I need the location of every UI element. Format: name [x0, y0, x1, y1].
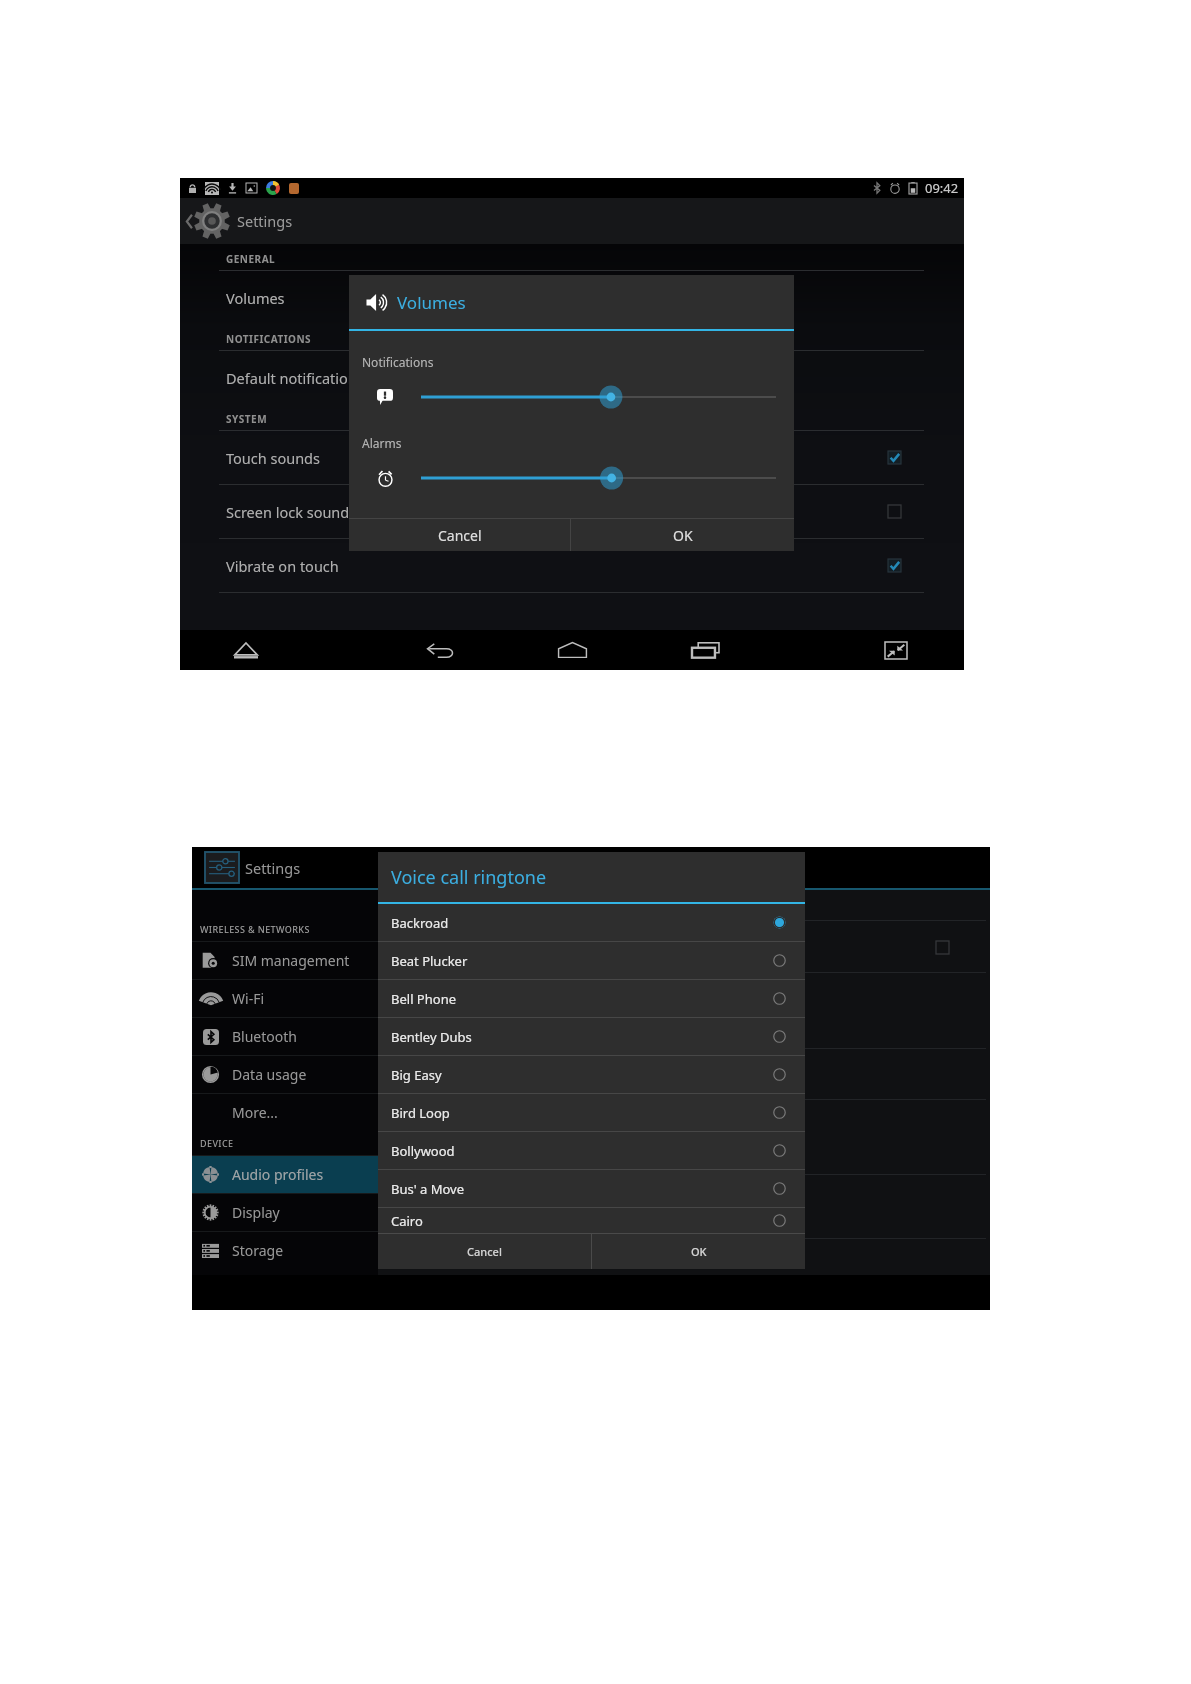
staticText: GENERAL — [226, 252, 964, 266]
button[interactable]: OK — [592, 1234, 805, 1269]
button[interactable]: Storage — [192, 1232, 378, 1269]
button[interactable]: Up — [226, 630, 266, 670]
staticText: Wi-Fi — [232, 989, 265, 1008]
staticText: Settings — [237, 211, 293, 231]
staticText: OK — [673, 526, 693, 545]
button[interactable]: Settings — [192, 847, 990, 888]
staticText: Volumes — [397, 291, 466, 314]
button[interactable]: Shrink screen — [876, 630, 916, 670]
button[interactable]: Bollywood — [378, 1132, 805, 1169]
button[interactable]: Big Easy — [378, 1056, 805, 1093]
button[interactable]: Cairo — [378, 1208, 805, 1233]
button[interactable]: Default notification — [180, 351, 964, 404]
button[interactable]: OK — [571, 519, 794, 551]
staticText: Cancel — [467, 1244, 502, 1259]
staticText: Audio profiles — [232, 1165, 324, 1184]
staticText: SIM management — [232, 951, 350, 970]
staticText: Bus' a Move — [391, 1180, 465, 1198]
staticText: Bollywood — [391, 1142, 455, 1160]
button[interactable]: Up: Settings — [180, 198, 293, 244]
staticText: More... — [232, 1103, 278, 1122]
staticText: Display — [232, 1203, 280, 1222]
button[interactable]: Bluetooth — [192, 1018, 378, 1055]
staticText: Bentley Dubs — [391, 1028, 472, 1046]
button[interactable]: Wi-Fi — [192, 980, 378, 1017]
button[interactable]: Bentley Dubs — [378, 1018, 805, 1055]
staticText: Volumes — [226, 288, 285, 308]
button[interactable]: Cancel — [378, 1234, 591, 1269]
button[interactable]: Vibrate on touch — [180, 539, 964, 592]
button[interactable]: More... — [192, 1094, 378, 1131]
button[interactable]: Back — [420, 630, 460, 670]
button[interactable]: Bird Loop — [378, 1094, 805, 1131]
button[interactable]: Display — [192, 1194, 378, 1231]
staticText: DEVICE — [200, 1137, 234, 1149]
staticText: Default notification — [226, 368, 357, 388]
staticText: Touch sounds — [226, 448, 320, 468]
staticText: Cancel — [438, 526, 482, 545]
button[interactable]: Touch sounds — [180, 431, 964, 484]
staticText: Backroad — [391, 914, 449, 932]
button[interactable]: Volumes — [180, 271, 964, 324]
staticText: Settings — [245, 858, 301, 878]
button[interactable]: Beat Plucker — [378, 942, 805, 979]
button[interactable]: Audio profiles — [192, 1156, 378, 1193]
button[interactable]: SIM management — [192, 942, 378, 979]
staticText: Data usage — [232, 1065, 307, 1084]
staticText: Bird Loop — [391, 1104, 450, 1122]
staticText: Alarms — [362, 435, 402, 451]
staticText: SYSTEM — [226, 412, 964, 426]
staticText: Vibrate on touch — [226, 556, 339, 576]
button[interactable]: Screen lock sound — [180, 485, 964, 538]
staticText: 09:42 — [925, 179, 959, 197]
staticText: Notifications — [362, 354, 434, 370]
staticText: Screen lock sound — [226, 502, 350, 522]
button[interactable]: Backroad — [378, 904, 805, 941]
staticText: Big Easy — [391, 1066, 442, 1084]
button[interactable]: Recent apps — [685, 630, 725, 670]
button[interactable]: Bus' a Move — [378, 1170, 805, 1207]
staticText: Bluetooth — [232, 1027, 297, 1046]
staticText: Beat Plucker — [391, 952, 468, 970]
staticText: Voice call ringtone — [391, 865, 547, 890]
staticText: Bell Phone — [391, 990, 457, 1008]
button[interactable]: Cancel — [349, 519, 570, 551]
staticText: NOTIFICATIONS — [226, 332, 964, 346]
staticText: WIRELESS & NETWORKS — [200, 923, 310, 935]
button[interactable]: Data usage — [192, 1056, 378, 1093]
staticText: OK — [691, 1244, 707, 1259]
button[interactable]: Home — [552, 630, 592, 670]
button[interactable]: Bell Phone — [378, 980, 805, 1017]
staticText: Storage — [232, 1241, 284, 1260]
staticText: Cairo — [391, 1212, 423, 1230]
